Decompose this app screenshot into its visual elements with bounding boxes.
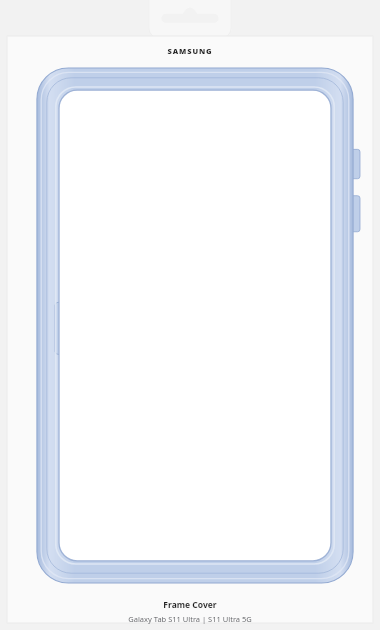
staticText: Frame Cover: [163, 599, 217, 611]
button[interactable]: Frame Cover product image: [30, 68, 360, 583]
staticText: Galaxy Tab S11 Ultra | S11 Ultra 5G: [128, 614, 252, 624]
staticText: SAMSUNG: [167, 46, 213, 56]
